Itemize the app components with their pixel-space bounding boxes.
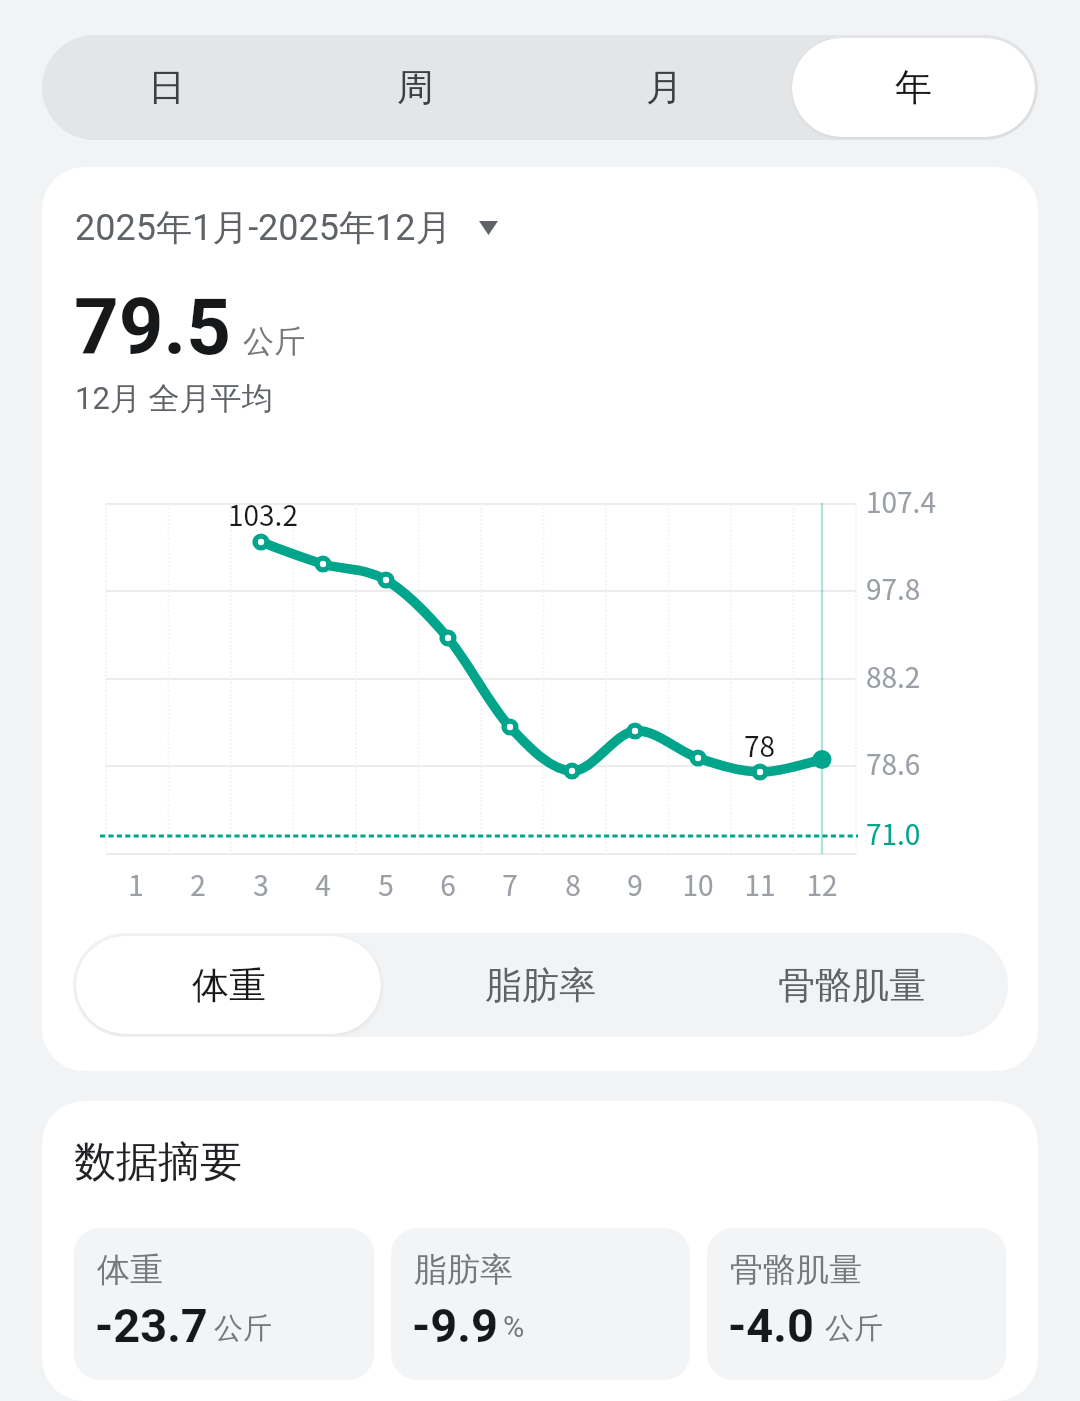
- button[interactable]: 体重: [74, 1228, 374, 1380]
- staticText: 9: [605, 864, 665, 905]
- staticText: 脂肪率: [485, 962, 596, 1009]
- staticText: -4.0: [728, 1298, 814, 1353]
- staticText: 8: [543, 864, 603, 905]
- staticText: 月: [646, 64, 683, 111]
- staticText: 107.4: [866, 481, 936, 522]
- staticText: 周: [397, 64, 434, 111]
- button[interactable]: 周: [291, 35, 540, 140]
- staticText: 88.2: [866, 656, 921, 697]
- staticText: -9.9: [412, 1298, 498, 1353]
- staticText: 体重: [192, 962, 266, 1009]
- staticText: 10: [668, 864, 728, 905]
- staticText: 97.8: [866, 568, 921, 609]
- button[interactable]: 脂肪率: [384, 933, 696, 1037]
- staticText: 2: [168, 864, 228, 905]
- staticText: 骨骼肌量: [730, 1249, 862, 1291]
- button[interactable]: 脂肪率: [391, 1228, 690, 1380]
- staticText: 5: [356, 864, 416, 905]
- staticText: 71.0: [866, 813, 921, 854]
- staticText: 公斤: [214, 1310, 272, 1347]
- button[interactable]: 骨骼肌量: [696, 933, 1008, 1037]
- staticText: 11: [730, 864, 790, 905]
- staticText: 2025年1月-2025年12月: [75, 205, 452, 250]
- staticText: 脂肪率: [414, 1249, 513, 1291]
- staticText: 12月 全月平均: [75, 379, 273, 418]
- staticText: 78.6: [866, 743, 921, 784]
- staticText: 年: [895, 64, 932, 111]
- button[interactable]: 选择日期范围 2025年1月-2025年12月: [75, 205, 498, 250]
- staticText: 日: [148, 64, 185, 111]
- staticText: 78: [744, 725, 776, 766]
- staticText: 骨骼肌量: [778, 962, 926, 1009]
- button[interactable]: 日: [42, 35, 291, 140]
- staticText: 79.5: [74, 282, 231, 373]
- button[interactable]: 月: [540, 35, 789, 140]
- staticText: 数据摘要: [74, 1136, 242, 1189]
- staticText: 4: [293, 864, 353, 905]
- staticText: %: [503, 1310, 525, 1344]
- staticText: 103.2: [228, 494, 298, 535]
- staticText: -23.7: [95, 1298, 208, 1353]
- staticText: 6: [418, 864, 478, 905]
- staticText: 公斤: [825, 1310, 883, 1347]
- button[interactable]: 体重: [76, 936, 381, 1034]
- staticText: 12: [792, 864, 852, 905]
- button[interactable]: 年: [792, 38, 1035, 137]
- staticText: 1: [106, 864, 166, 905]
- button[interactable]: 骨骼肌量: [707, 1228, 1006, 1380]
- staticText: 公斤: [243, 322, 305, 361]
- staticText: 3: [231, 864, 291, 905]
- staticText: 体重: [97, 1249, 163, 1291]
- staticText: 7: [480, 864, 540, 905]
